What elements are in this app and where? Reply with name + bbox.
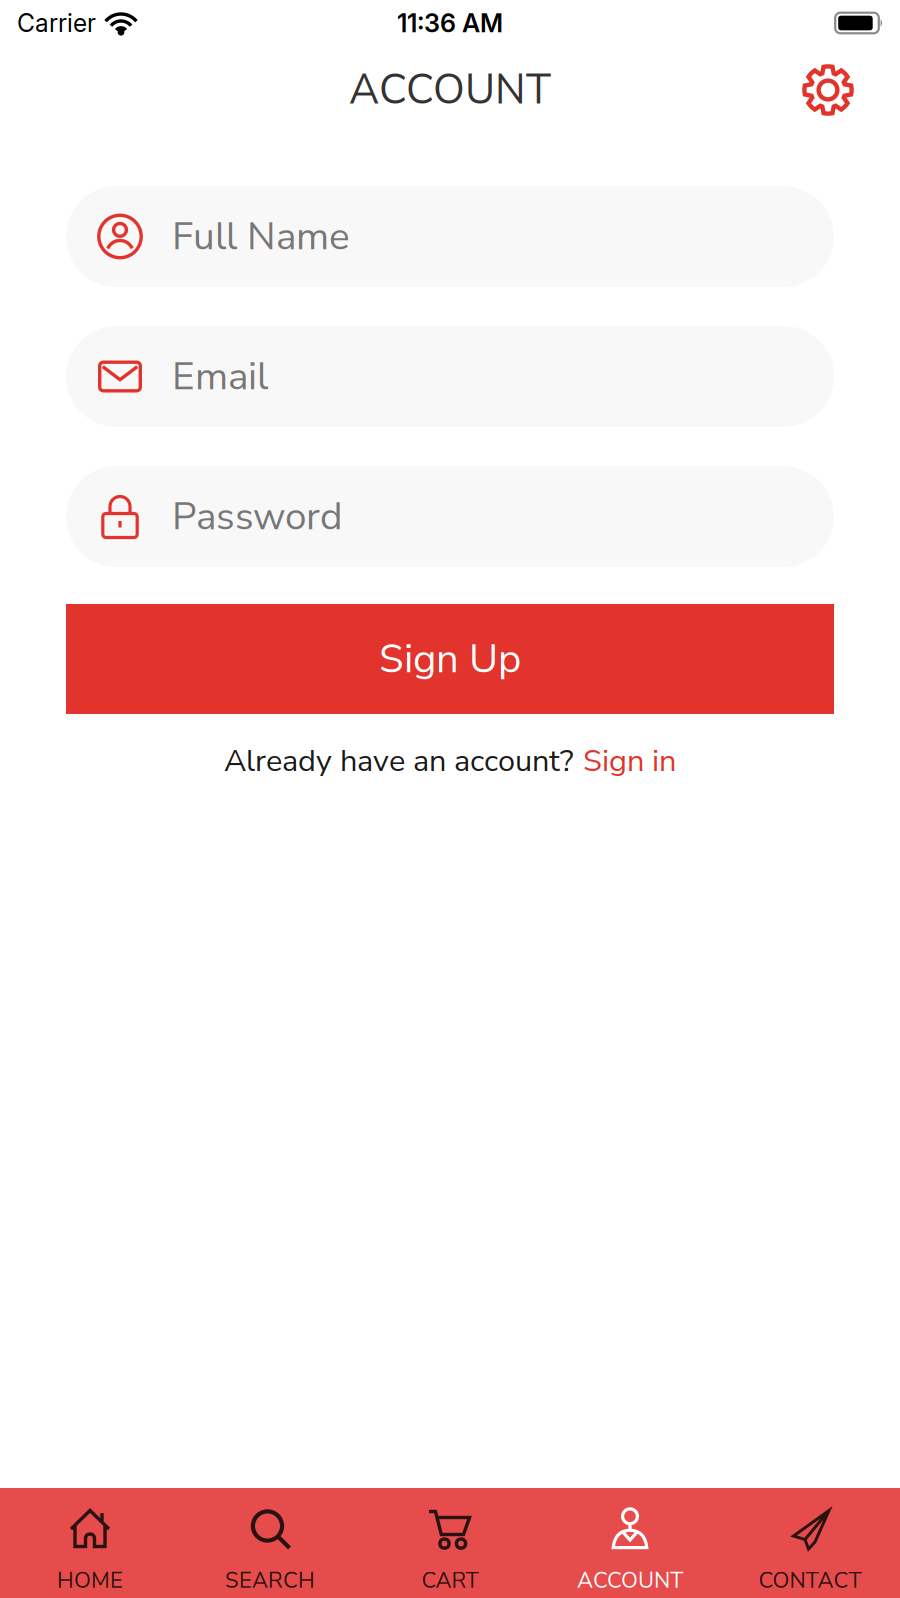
staticText: SEARCH (225, 1565, 315, 1595)
staticText: ACCOUNT (349, 62, 551, 118)
button[interactable]: CONTACT (720, 1486, 900, 1598)
button[interactable]: Sign Up (66, 604, 834, 714)
staticText: Already have an account? (224, 740, 574, 782)
staticText: Sign Up (379, 632, 521, 686)
staticText: HOME (57, 1565, 123, 1595)
button[interactable]: ACCOUNT (540, 1486, 720, 1598)
staticText: CONTACT (758, 1565, 861, 1595)
button[interactable]: Password (66, 466, 834, 567)
button[interactable]: Full Name (66, 186, 834, 287)
button[interactable]: SEARCH (180, 1486, 360, 1598)
staticText: Password (172, 490, 343, 543)
staticText: 11:36 AM (397, 8, 503, 38)
staticText: ACCOUNT (577, 1565, 683, 1595)
staticText: Sign in (583, 740, 676, 782)
button[interactable]: Email (66, 326, 834, 427)
staticText: CART (421, 1565, 478, 1595)
button[interactable]: HOME (0, 1486, 180, 1598)
staticText: Email (172, 350, 268, 403)
staticText: Full Name (172, 210, 350, 263)
button[interactable]: CART (360, 1486, 540, 1598)
button[interactable]: Settings (802, 64, 854, 116)
button[interactable]: Sign in (583, 740, 676, 782)
staticText: Carrier (17, 8, 96, 38)
